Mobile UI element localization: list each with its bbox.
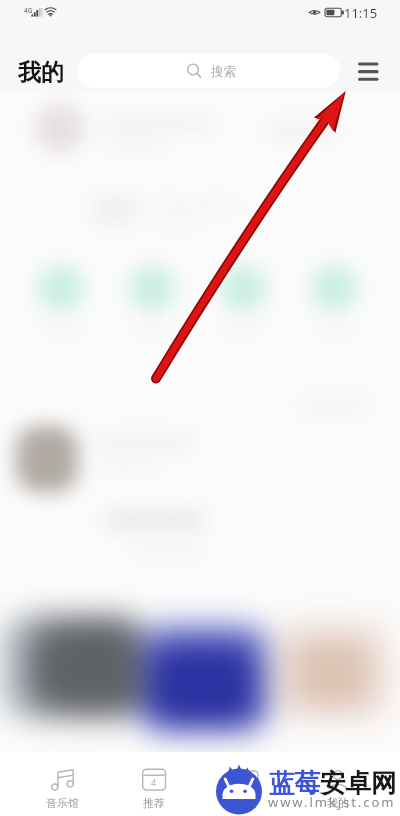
staticText: 推荐 — [143, 796, 165, 810]
staticText: 视频 — [235, 796, 257, 810]
staticText: 我的 — [18, 58, 64, 87]
staticText: 4 — [151, 776, 157, 788]
button[interactable]: 音乐馆 — [16, 752, 108, 816]
staticText: 蓝莓 — [269, 767, 320, 799]
button[interactable]: 搜索 — [78, 53, 340, 88]
staticText: 音乐馆 — [46, 796, 79, 810]
staticText: 11:15 — [344, 4, 378, 22]
staticText: 安卓网 — [320, 767, 397, 799]
staticText: www.lmkjst.com — [268, 793, 396, 811]
button[interactable]: 推荐 — [108, 752, 200, 816]
button[interactable]: 我的 — [292, 752, 384, 816]
button[interactable]: Menu — [352, 54, 384, 86]
staticText: 搜索 — [211, 64, 236, 80]
button[interactable]: 视频 — [200, 752, 292, 816]
staticText: 4G — [24, 6, 33, 15]
staticText: 我的 — [327, 796, 349, 810]
